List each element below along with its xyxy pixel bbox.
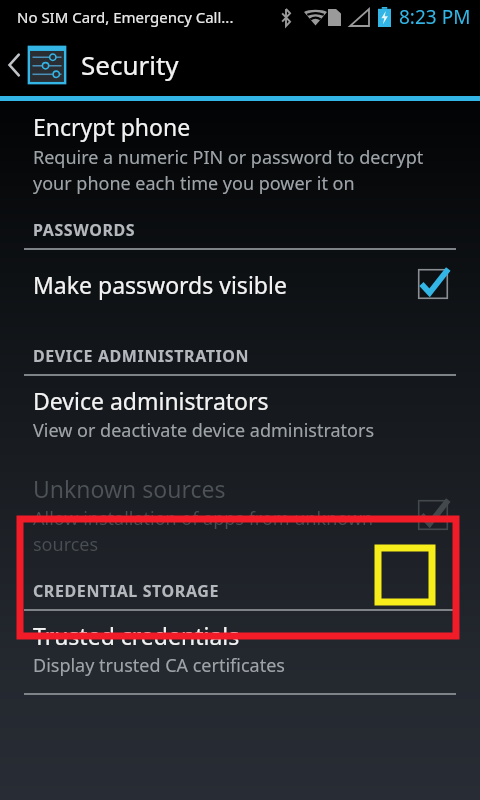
staticText: Device administrators [33,385,269,416]
button[interactable]: Unknown sources [0,463,480,568]
staticText: View or deactivate device administrators [33,418,375,443]
staticText: Require a numeric PIN or password to dec… [33,145,456,195]
button[interactable]: Navigate up, Security [0,33,480,96]
staticText: Trusted credentials [33,620,240,651]
staticText: No SIM Card, Emergency Call... [17,7,234,27]
staticText: Encrypt phone [33,111,191,142]
staticText: Unknown sources [33,473,226,504]
staticText: Allow installation of apps from unknown … [33,506,376,556]
button[interactable]: Device administrators [0,376,480,452]
staticText: Make passwords visible [33,269,287,300]
button[interactable]: Make passwords visible [0,250,480,318]
staticText: CREDENTIAL STORAGE [33,580,220,602]
staticText: Display trusted CA certificates [33,653,285,678]
staticText: DEVICE ADMINISTRATION [33,345,250,367]
button[interactable]: Encrypt phone [0,107,480,201]
staticText: Security [81,47,179,82]
staticText: 8:23 PM [399,4,471,30]
button[interactable]: Trusted credentials [0,611,480,687]
staticText: PASSWORDS [33,219,136,241]
